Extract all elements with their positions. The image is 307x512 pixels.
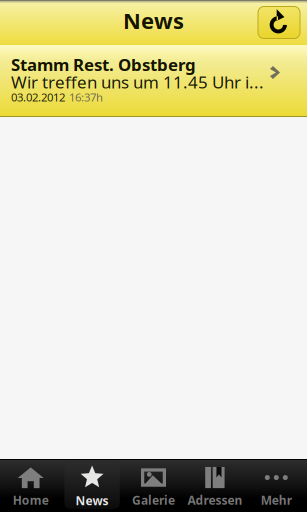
button[interactable]: Refresh [258,6,300,38]
staticText: 03.02.2012 [11,89,65,105]
button[interactable]: Stamm Rest. Obstberg [0,45,307,117]
staticText: Wir treffen uns um 11.45 Uhr i... [11,70,264,94]
button[interactable]: Home [0,459,61,512]
staticText: Mehr [261,492,292,508]
button[interactable]: News [61,459,123,512]
staticText: Home [13,492,49,508]
staticText: Stamm Rest. Obstberg [11,53,196,76]
button[interactable]: Galerie [123,459,184,512]
staticText: 16:37h [69,89,103,105]
staticText: News [76,492,109,508]
staticText: News [123,6,184,35]
button[interactable]: Adressen [184,459,246,512]
staticText: Galerie [132,492,175,508]
button[interactable]: Mehr [246,459,307,512]
staticText: Adressen [187,492,242,508]
